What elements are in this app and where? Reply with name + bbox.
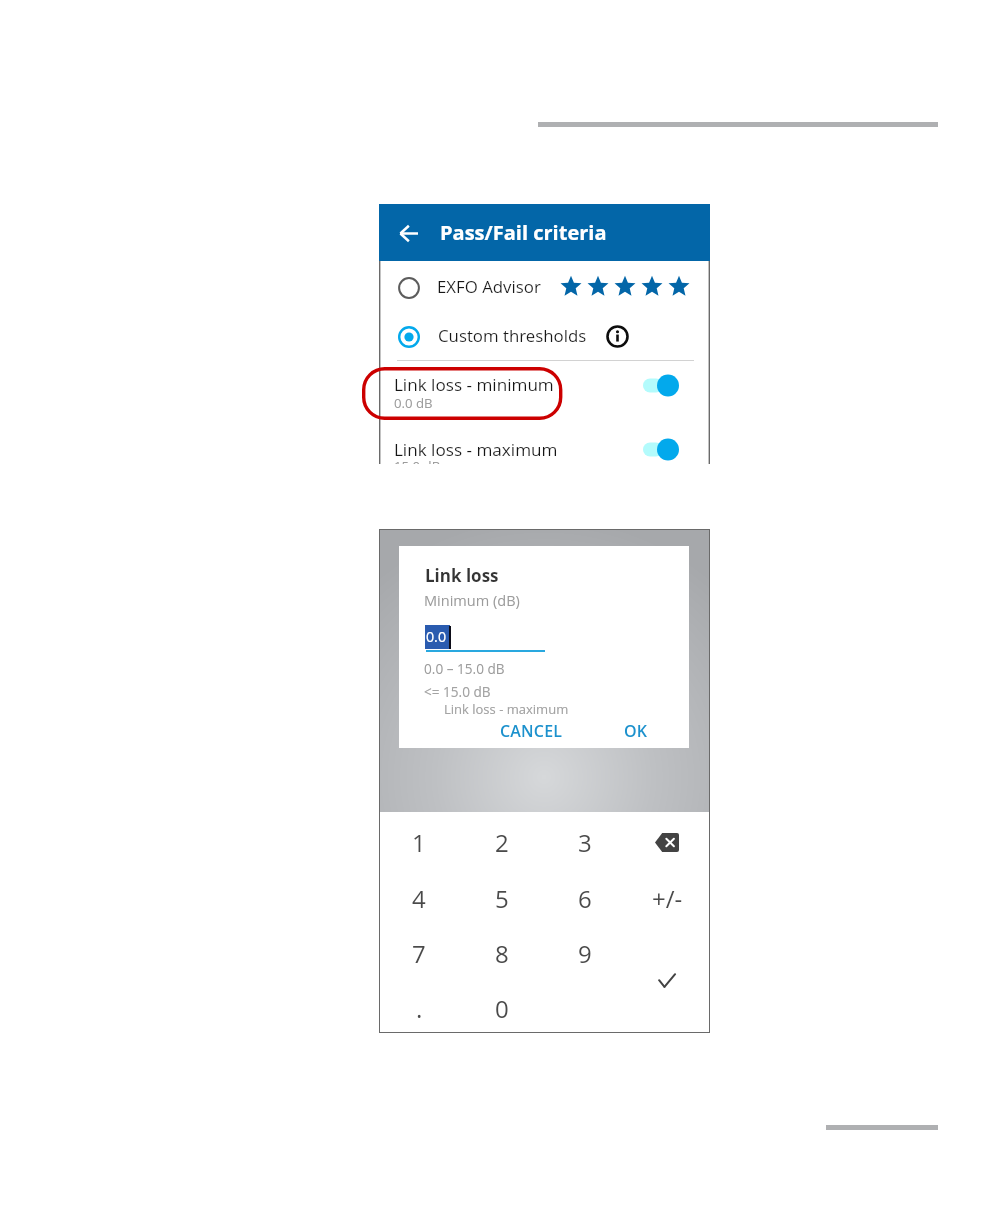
staticText: 0.0 (426, 627, 446, 646)
button[interactable]: Toggle (643, 374, 679, 397)
staticText: CANCEL (500, 720, 563, 742)
button[interactable]: . (384, 982, 454, 1033)
staticText: 6 (578, 882, 592, 915)
staticText: . (416, 992, 423, 1025)
button[interactable] (379, 314, 710, 360)
staticText: 9 (578, 937, 592, 970)
staticText: 1 (412, 826, 426, 859)
button[interactable]: 9 (550, 927, 620, 979)
staticText: 15.0 dB (394, 457, 441, 464)
staticText: EXFO Advisor (437, 275, 541, 298)
button[interactable]: CANCEL (495, 719, 567, 743)
button[interactable] (379, 362, 710, 419)
staticText: OK (624, 720, 648, 742)
button[interactable] (379, 419, 710, 464)
button[interactable]: 7 (384, 927, 454, 979)
staticText: Link loss - minimum (394, 373, 554, 396)
button[interactable]: OK (616, 719, 656, 743)
staticText: Minimum (dB) (424, 591, 520, 611)
staticText: 0.0 – 15.0 dB (424, 659, 505, 678)
button[interactable]: Backspace (632, 816, 702, 868)
staticText: 0.0 dB (394, 394, 433, 412)
staticText: Pass/Fail criteria (440, 219, 607, 246)
staticText: Link loss - maximum (444, 700, 569, 718)
button[interactable]: 6 (550, 872, 620, 924)
button[interactable]: 2 (467, 816, 537, 868)
staticText: 4 (412, 882, 426, 915)
button[interactable]: 1 (384, 816, 454, 868)
button[interactable]: +/- (632, 872, 702, 924)
staticText: 8 (495, 937, 509, 970)
button[interactable]: 3 (550, 816, 620, 868)
button[interactable]: 0 (467, 982, 537, 1033)
staticText: 2 (495, 826, 509, 859)
staticText: 7 (412, 937, 426, 970)
button[interactable]: Confirm (632, 954, 702, 1006)
staticText: +/- (652, 882, 683, 915)
button[interactable]: 8 (467, 927, 537, 979)
staticText: Link loss - maximum (394, 438, 558, 461)
staticText: 5 (495, 882, 509, 915)
button[interactable] (379, 261, 710, 311)
staticText: Custom thresholds (438, 324, 587, 347)
button[interactable]: 5 (467, 872, 537, 924)
button[interactable]: Toggle (643, 438, 679, 461)
button[interactable]: 4 (384, 872, 454, 924)
staticText: 3 (578, 826, 592, 859)
button[interactable]: Information (606, 325, 629, 348)
staticText: <= 15.0 dB (424, 682, 491, 701)
staticText: Link loss (425, 564, 499, 587)
button[interactable] (379, 204, 710, 261)
staticText: 0 (495, 992, 509, 1025)
button[interactable]: Back (393, 220, 419, 246)
